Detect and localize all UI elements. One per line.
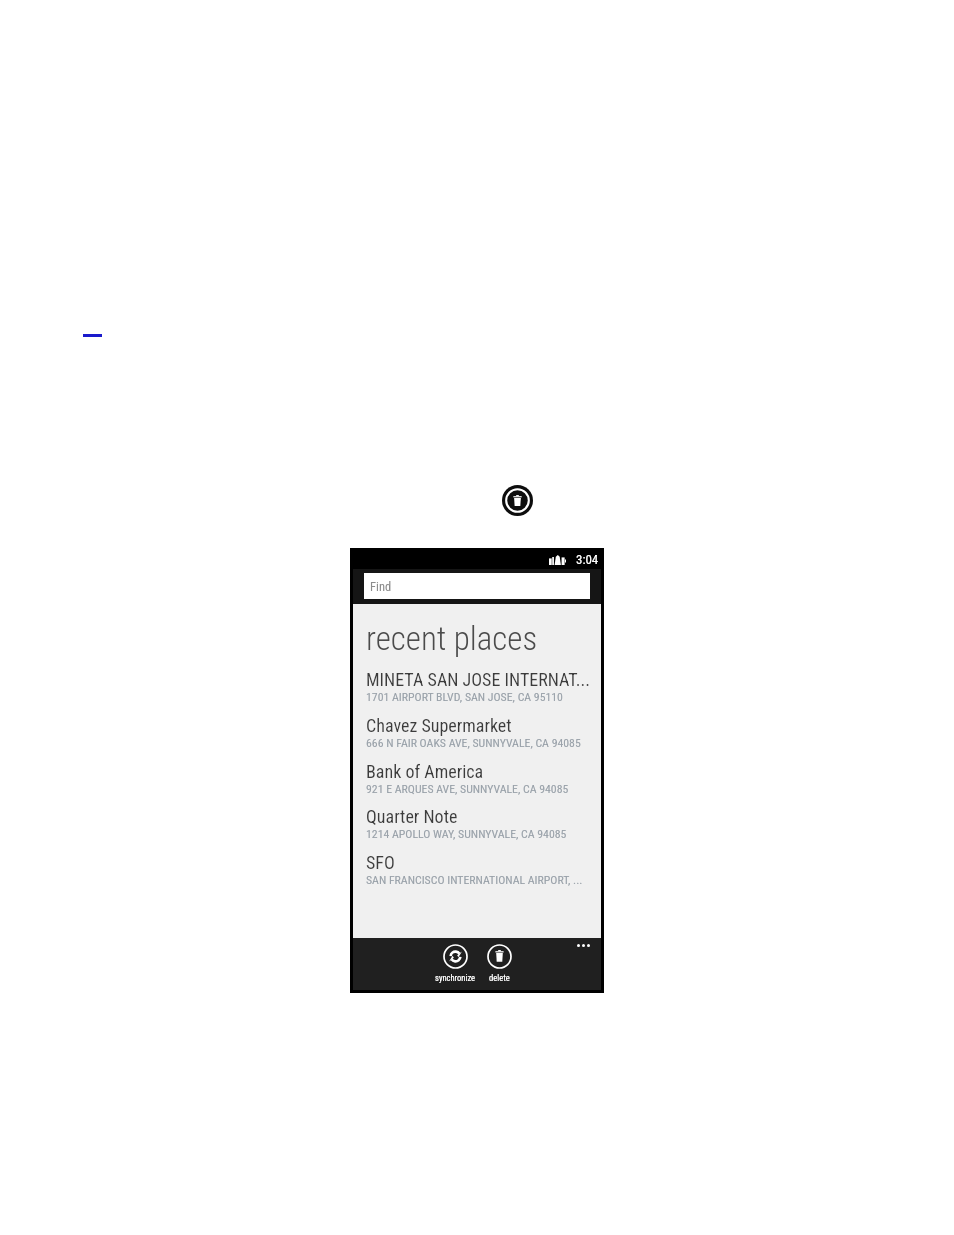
button[interactable]: More options — [569, 938, 601, 953]
button[interactable]: MINETA SAN JOSE INTERNAT... — [353, 669, 601, 711]
staticText: 1701 AIRPORT BLVD, SAN JOSE, CA 95110 — [366, 690, 563, 704]
staticText: MINETA SAN JOSE INTERNAT... — [366, 669, 591, 690]
staticText: 3:04 — [576, 552, 599, 567]
staticText: synchronize — [435, 973, 476, 983]
button[interactable]: Chavez Supermarket — [353, 715, 601, 757]
staticText: recent places — [366, 619, 538, 658]
button[interactable]: Find — [364, 573, 590, 599]
staticText: SAN FRANCISCO INTERNATIONAL AIRPORT, ... — [366, 873, 583, 887]
button[interactable]: Bank of America — [353, 761, 601, 803]
button[interactable]: Delete — [502, 485, 533, 516]
button[interactable]: Synchronize — [425, 944, 485, 983]
staticText: 921 E ARQUES AVE, SUNNYVALE, CA 94085 — [366, 782, 569, 796]
staticText: 1214 APOLLO WAY, SUNNYVALE, CA 94085 — [366, 827, 567, 841]
button[interactable]: SFO — [353, 852, 601, 894]
staticText: Chavez Supermarket — [366, 715, 512, 736]
button[interactable]: Delete — [469, 944, 529, 983]
staticText: 666 N FAIR OAKS AVE, SUNNYVALE, CA 94085 — [366, 736, 581, 750]
staticText: delete — [489, 973, 510, 983]
staticText: SFO — [366, 852, 395, 873]
staticText: Bank of America — [366, 761, 484, 782]
staticText: Find — [370, 579, 392, 594]
staticText: Quarter Note — [366, 806, 458, 827]
button[interactable]: Quarter Note — [353, 806, 601, 848]
